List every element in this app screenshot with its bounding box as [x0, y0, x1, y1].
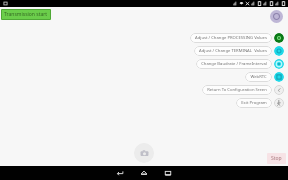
button[interactable]: Change Baudrate / FrameInterval	[274, 59, 284, 69]
staticText: Stop	[271, 155, 282, 162]
button[interactable]: Settings	[270, 10, 283, 23]
staticText: Transmission start	[4, 11, 48, 18]
button[interactable]: Recent apps	[156, 166, 180, 180]
button[interactable]: Adjust / Change TERMINAL Values	[194, 46, 272, 56]
button[interactable]: Take photo	[134, 143, 154, 163]
button[interactable]: WebRTC	[245, 72, 272, 82]
staticText: Change Baudrate / FrameInterval	[201, 61, 267, 67]
button[interactable]: Stop	[267, 153, 286, 164]
staticText: Exit Program	[241, 100, 267, 106]
staticText: Adjust / Change TERMINAL Values	[199, 48, 267, 54]
staticText: Adjust / Change PROCESSING Values	[195, 35, 267, 41]
button[interactable]: Exit Program	[236, 98, 272, 108]
button[interactable]: Adjust / Change TERMINAL Values	[274, 46, 284, 56]
button[interactable]: WebRTC	[274, 72, 284, 82]
button[interactable]: Transmission start	[1, 9, 51, 20]
button[interactable]: Return To Configuration Sreen	[202, 85, 272, 95]
button[interactable]: Home	[132, 166, 156, 180]
button[interactable]: Adjust / Change PROCESSING Values	[190, 33, 272, 43]
button[interactable]: Change Baudrate / FrameInterval	[196, 59, 272, 69]
staticText: WebRTC	[250, 74, 267, 80]
button[interactable]: Exit Program	[274, 98, 284, 108]
button[interactable]: Back	[108, 166, 132, 180]
button[interactable]: Return To Configuration Sreen	[274, 85, 284, 95]
button[interactable]: Adjust / Change PROCESSING Values	[274, 33, 284, 43]
staticText: Return To Configuration Sreen	[207, 87, 267, 93]
